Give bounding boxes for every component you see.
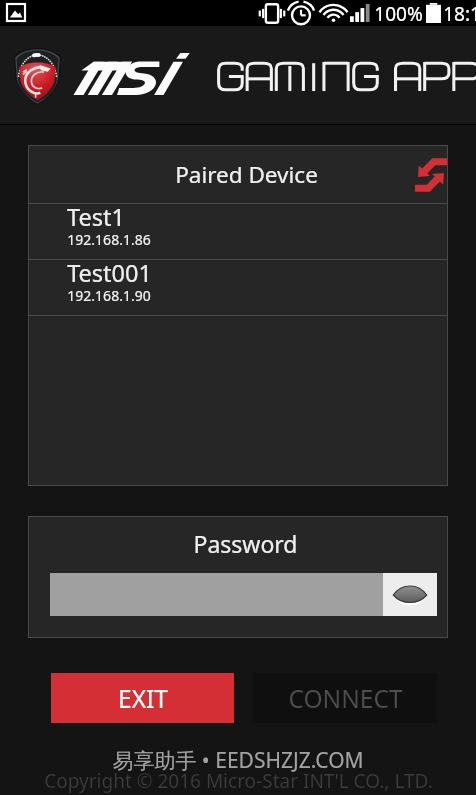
button[interactable]: Test1 — [29, 204, 447, 259]
staticText: Password — [193, 528, 298, 559]
staticText: 192.168.1.90 — [67, 286, 151, 305]
staticText: CONNECT — [288, 682, 403, 715]
button[interactable]: CONNECT — [253, 673, 437, 723]
staticText: Test001 — [67, 257, 152, 289]
staticText: 易享助手 • EEDSHZJZ.COM — [112, 746, 364, 775]
staticText: Paired Device — [175, 159, 318, 190]
staticText: 18:1 — [443, 1, 476, 27]
staticText: EXIT — [118, 682, 168, 715]
button[interactable]: EXIT — [51, 673, 234, 723]
button[interactable]: Show password — [383, 573, 437, 616]
button[interactable]: Test001 — [29, 260, 447, 315]
staticText: Copyright © 2016 Micro-Star INT'L CO., L… — [44, 768, 433, 794]
staticText: Test1 — [67, 201, 125, 233]
staticText: 100% — [374, 1, 423, 27]
button[interactable]: Refresh — [408, 152, 454, 198]
staticText: 192.168.1.86 — [67, 230, 151, 249]
